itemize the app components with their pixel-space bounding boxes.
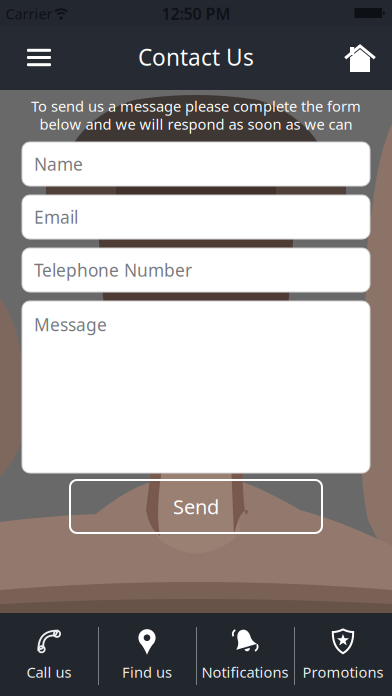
staticText: Email bbox=[34, 205, 78, 228]
button[interactable]: Email bbox=[22, 195, 370, 239]
staticText: Notifications bbox=[201, 662, 288, 682]
staticText: Name bbox=[34, 152, 83, 175]
staticText: 12:50 PM bbox=[161, 3, 230, 24]
staticText: Call us bbox=[26, 662, 71, 682]
staticText: Find us bbox=[122, 662, 172, 682]
staticText: Telephone Number bbox=[34, 258, 192, 281]
staticText: Promotions bbox=[302, 662, 383, 682]
staticText: Send bbox=[173, 493, 219, 520]
staticText: Message bbox=[34, 313, 107, 336]
button[interactable] bbox=[17, 35, 61, 79]
button[interactable]: Message bbox=[22, 301, 370, 473]
button[interactable]: Send bbox=[70, 480, 322, 533]
button[interactable] bbox=[344, 43, 376, 73]
button[interactable]: Promotions bbox=[294, 613, 392, 696]
button[interactable]: Call us bbox=[0, 613, 98, 696]
button[interactable]: Notifications bbox=[196, 613, 294, 696]
button[interactable]: Telephone Number bbox=[22, 248, 370, 292]
staticText: below and we will respond as soon as we … bbox=[39, 114, 352, 134]
staticText: Carrier bbox=[5, 4, 52, 23]
staticText: Contact Us bbox=[138, 42, 254, 72]
staticText: To send us a message please complete the… bbox=[31, 96, 361, 116]
button[interactable]: Name bbox=[22, 142, 370, 186]
button[interactable]: Find us bbox=[98, 613, 196, 696]
